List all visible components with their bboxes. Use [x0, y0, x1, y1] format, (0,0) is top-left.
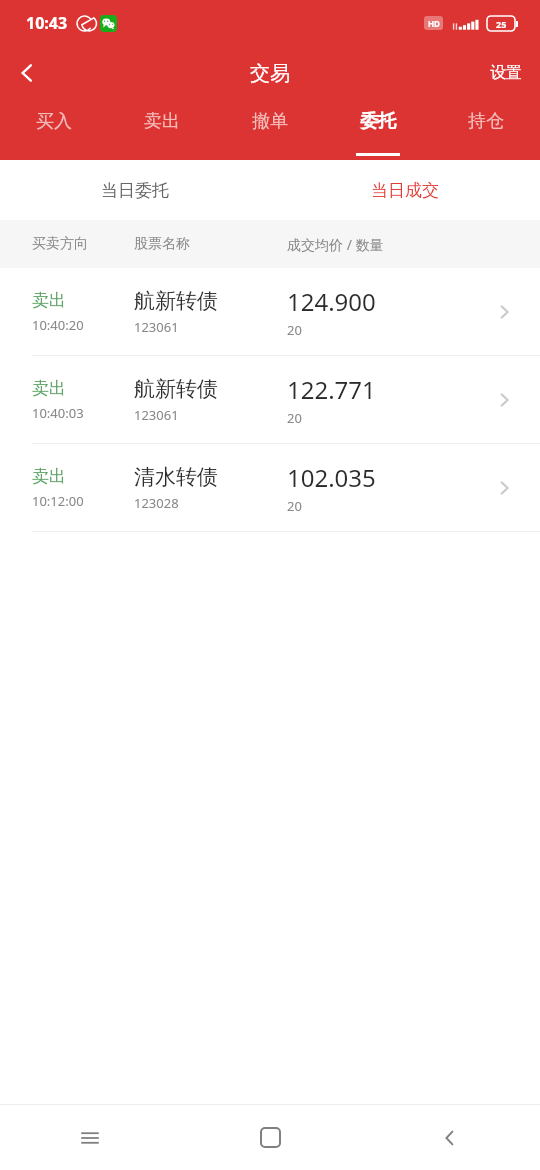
staticText: 买入	[36, 110, 72, 133]
staticText: 122.771	[287, 373, 376, 406]
button[interactable]: Recent apps	[0, 1105, 180, 1170]
staticText: 委托	[360, 110, 396, 133]
staticText: 20	[287, 321, 302, 339]
button[interactable]: 委托	[324, 104, 432, 160]
staticText: 10:40:20	[32, 316, 84, 334]
staticText: 成交均价 / 数量	[287, 235, 384, 254]
staticText: 123028	[134, 494, 179, 512]
staticText: 当日委托	[101, 180, 169, 201]
staticText: 卖出	[32, 378, 66, 399]
staticText: 买卖方向	[32, 235, 88, 253]
button[interactable]: Home	[180, 1105, 360, 1170]
staticText: 20	[287, 409, 302, 427]
staticText: 20	[287, 497, 302, 515]
button[interactable]: 持仓	[432, 104, 540, 160]
staticText: 10:40:03	[32, 404, 84, 422]
staticText: 123061	[134, 406, 179, 424]
staticText: 卖出	[144, 110, 180, 133]
staticText: HD	[428, 18, 440, 29]
staticText: 撤单	[252, 110, 288, 133]
staticText: 10:12:00	[32, 492, 84, 510]
staticText: 102.035	[287, 461, 376, 494]
staticText: 设置	[490, 63, 522, 83]
staticText: 航新转债	[134, 288, 218, 314]
staticText: 股票名称	[134, 235, 190, 253]
staticText: 当日成交	[371, 180, 439, 201]
button[interactable]: 卖出	[0, 356, 540, 443]
button[interactable]: 卖出	[0, 268, 540, 355]
button[interactable]: 设置	[472, 51, 540, 95]
button[interactable]: 卖出	[108, 104, 216, 160]
staticText: 25	[496, 18, 507, 30]
staticText: 交易	[250, 61, 290, 86]
button[interactable]: 当日成交	[270, 160, 540, 220]
staticText: 124.900	[287, 285, 376, 318]
staticText: 清水转债	[134, 464, 218, 490]
button[interactable]: 撤单	[216, 104, 324, 160]
button[interactable]: Back	[360, 1105, 540, 1170]
staticText: 航新转债	[134, 376, 218, 402]
button[interactable]: 买入	[0, 104, 108, 160]
button[interactable]: 当日委托	[0, 160, 270, 220]
button[interactable]: Back	[0, 46, 54, 100]
staticText: 10:43	[26, 12, 68, 34]
staticText: 卖出	[32, 290, 66, 311]
staticText: 持仓	[468, 110, 504, 133]
staticText: 123061	[134, 318, 179, 336]
button[interactable]: 卖出	[0, 444, 540, 531]
staticText: 卖出	[32, 466, 66, 487]
